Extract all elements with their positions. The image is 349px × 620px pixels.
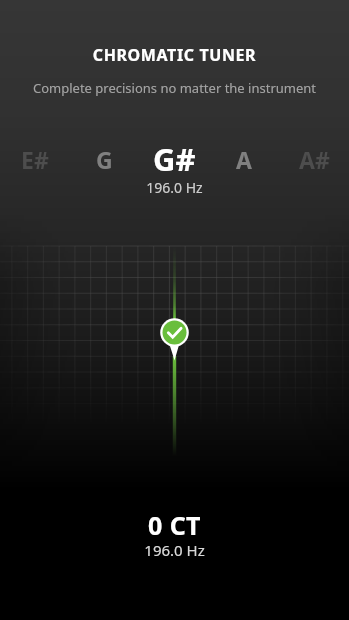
staticText: 0 CT [0,508,349,542]
staticText: G# [153,138,196,180]
staticText: 196.0 Hz [0,540,349,560]
staticText: A [236,144,252,175]
staticText: 196.0 Hz [0,178,349,197]
staticText: E# [21,144,49,175]
button[interactable]: G# [139,136,209,182]
button[interactable]: G [69,136,139,182]
staticText: G [96,144,113,175]
staticText: A# [299,144,330,175]
staticText: CHROMATIC TUNER [0,44,349,66]
button[interactable]: A# [279,136,349,182]
button[interactable]: A [209,136,279,182]
staticText: Complete precisions no matter the instru… [0,79,349,97]
button[interactable]: E# [0,136,69,182]
